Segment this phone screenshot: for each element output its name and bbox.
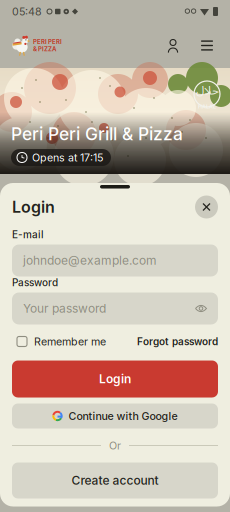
button[interactable]: Your password [12,292,218,324]
staticText: HALAL [198,103,216,110]
button[interactable]: Peri Peri & Pizza home [12,34,62,56]
staticText: Opens at 17:15 [32,151,103,164]
button[interactable]: johndoe@example.com [12,244,218,276]
button[interactable]: Account [162,34,184,56]
staticText: Or [109,439,121,452]
button[interactable]: Login [12,360,218,397]
staticText: 05:48 [12,5,42,18]
staticText: Password [12,276,58,289]
staticText: Your password [23,301,106,316]
button[interactable]: Close [195,195,218,218]
button[interactable]: Forgot password [137,335,218,347]
staticText: Login [12,197,55,217]
button[interactable]: Create account [12,462,218,498]
staticText: E-mail [12,228,44,241]
staticText: Peri Peri Grill & Pizza [11,123,183,144]
staticText: Forgot password [137,335,218,348]
staticText: Continue with Google [68,409,177,422]
staticText: Login [99,372,131,386]
staticText: PERI PERI & PIZZA [33,38,62,53]
staticText: Create account [71,473,158,488]
button[interactable]: Continue with Google [12,403,218,428]
button[interactable]: Remember me [12,335,106,347]
button[interactable]: Menu [196,34,218,56]
staticText: johndoe@example.com [23,253,157,268]
staticText: Remember me [34,335,106,348]
staticText: حلال [195,78,218,103]
